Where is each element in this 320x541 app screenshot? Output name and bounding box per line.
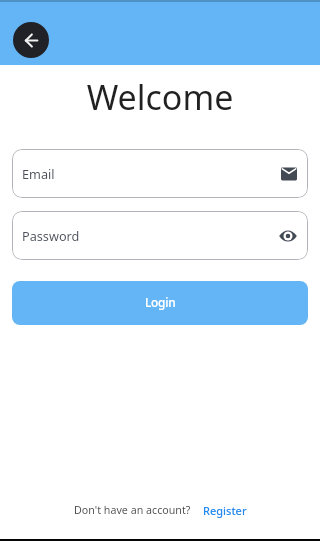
button[interactable]: Password <box>12 211 308 260</box>
staticText: Login <box>145 294 176 310</box>
staticText: Don't have an account? <box>74 503 191 518</box>
staticText: Register <box>203 503 247 518</box>
staticText: Password <box>22 227 80 244</box>
button[interactable]: Register <box>203 503 247 518</box>
staticText: Email <box>22 165 55 182</box>
staticText: Welcome <box>0 74 320 120</box>
button[interactable]: Back <box>13 22 49 58</box>
button[interactable]: Login <box>12 281 308 325</box>
button[interactable]: Email <box>12 149 308 198</box>
